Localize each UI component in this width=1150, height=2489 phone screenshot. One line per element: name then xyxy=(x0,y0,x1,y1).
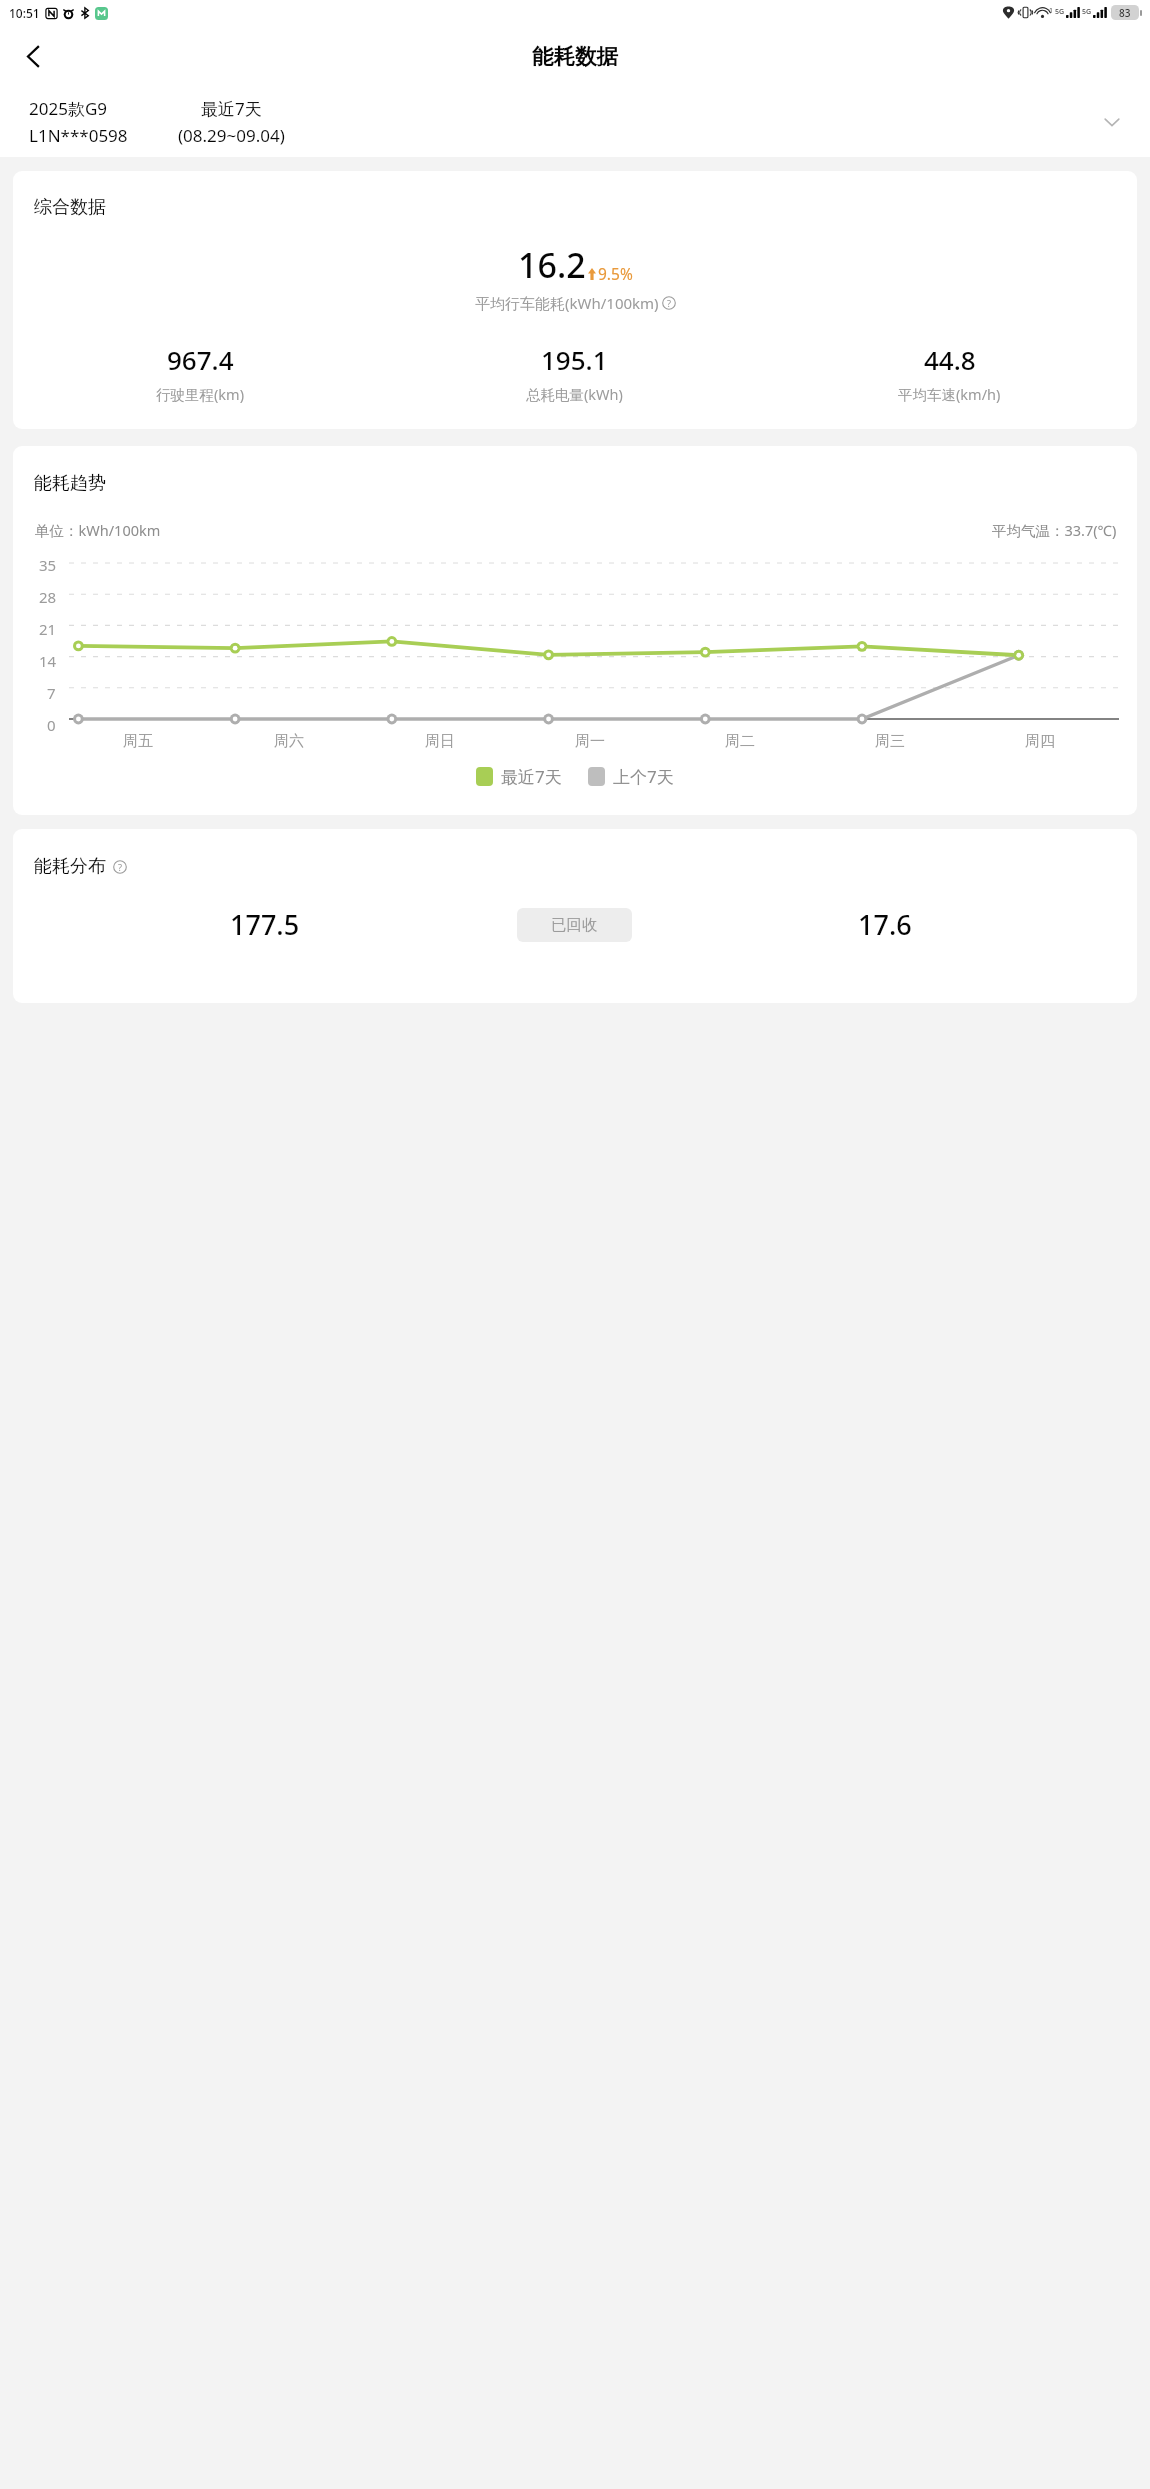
staticText: 28 xyxy=(39,587,57,607)
button[interactable]: Back xyxy=(8,31,58,81)
staticText: 9.5% xyxy=(598,263,633,284)
button[interactable]: 综合数据 xyxy=(13,171,1137,429)
staticText: 上个7天 xyxy=(613,765,674,788)
staticText: 5G xyxy=(1055,7,1065,17)
button[interactable]: 2025款G9 xyxy=(0,87,1150,157)
staticText: 综合数据 xyxy=(34,196,106,219)
staticText: 能耗趋势 xyxy=(34,472,106,495)
staticText: 能耗数据 xyxy=(532,43,618,70)
staticText: 17.6 xyxy=(858,906,912,943)
staticText: 单位：kWh/100km xyxy=(35,520,161,540)
staticText: 周六 xyxy=(274,732,304,751)
staticText: 10:51 xyxy=(9,5,40,21)
staticText: 16.2 xyxy=(518,242,586,288)
staticText: 2025款G9 xyxy=(29,97,107,120)
staticText: 195.1 xyxy=(541,342,608,377)
staticText: 967.4 xyxy=(167,342,234,377)
staticText: 最近7天 xyxy=(501,765,562,788)
staticText: 周三 xyxy=(875,732,905,751)
staticText: 周四 xyxy=(1025,732,1055,751)
staticText: ? xyxy=(667,297,672,310)
other: Expand xyxy=(1094,104,1130,140)
button[interactable]: 44.8 xyxy=(762,342,1137,404)
staticText: 已回收 xyxy=(551,915,598,935)
staticText: 35 xyxy=(39,555,57,575)
staticText: 14 xyxy=(39,651,57,671)
staticText: 7 xyxy=(47,683,56,703)
button[interactable]: 能耗分布 xyxy=(13,829,1137,1003)
staticText: 44.8 xyxy=(924,342,976,377)
staticText: 周五 xyxy=(123,732,153,751)
staticText: 周二 xyxy=(725,732,755,751)
staticText: 5G xyxy=(1082,7,1092,17)
staticText: 0 xyxy=(47,715,56,735)
staticText: ? xyxy=(118,861,123,874)
staticText: (08.29~09.04) xyxy=(178,124,285,147)
staticText: 平均气温：33.7(℃) xyxy=(992,520,1117,540)
staticText: 周日 xyxy=(425,732,455,751)
staticText: 最近7天 xyxy=(201,97,262,120)
staticText: 21 xyxy=(39,619,57,639)
staticText: 行驶里程(km) xyxy=(156,384,245,404)
staticText: 1 xyxy=(1049,6,1054,16)
staticText: 总耗电量(kWh) xyxy=(526,384,623,404)
button[interactable]: 195.1 xyxy=(387,342,762,404)
button[interactable]: 最近7天 xyxy=(476,765,562,788)
staticText: 能耗分布 xyxy=(34,855,106,878)
button[interactable]: 967.4 xyxy=(13,342,387,404)
staticText: L1N***0598 xyxy=(29,124,128,147)
button[interactable]: 上个7天 xyxy=(588,765,674,788)
staticText: 177.5 xyxy=(230,906,300,943)
staticText: 83 xyxy=(1119,6,1131,20)
button[interactable]: 能耗趋势 xyxy=(13,446,1137,815)
staticText: 平均车速(km/h) xyxy=(898,384,1001,404)
staticText: 周一 xyxy=(575,732,605,751)
staticText: 平均行车能耗(kWh/100km) xyxy=(475,293,659,313)
